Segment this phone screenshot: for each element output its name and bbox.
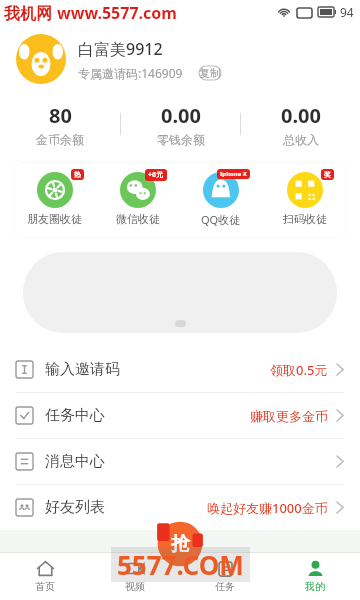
button[interactable]: 抢红包 xyxy=(154,518,206,570)
button[interactable]: 0.00 xyxy=(241,102,360,147)
staticText: 消息中心 xyxy=(45,452,105,471)
button[interactable]: 我的 xyxy=(270,552,360,600)
staticText: 复制 xyxy=(199,66,221,80)
button[interactable]: 0.00 xyxy=(121,102,240,147)
button[interactable]: 复制 xyxy=(191,65,229,81)
staticText: +6元 xyxy=(148,170,164,180)
staticText: QQ收徒 xyxy=(201,212,241,227)
button[interactable]: 白富美9912 xyxy=(0,24,360,94)
staticText: 专属邀请码:146909 xyxy=(78,65,183,81)
staticText: 抢 xyxy=(171,532,190,556)
button[interactable]: 消息中心 xyxy=(0,439,360,484)
staticText: 输入邀请码 xyxy=(45,360,120,379)
staticText: 赚取更多金币 xyxy=(250,408,328,424)
staticText: 80 xyxy=(49,102,72,129)
staticText: 我机网 xyxy=(4,2,57,24)
staticText: 首页 xyxy=(35,580,55,593)
staticText: 领取0.5元 xyxy=(270,361,328,379)
staticText: 唤起好友赚1000金币 xyxy=(207,499,328,517)
staticText: www.5577.com xyxy=(57,2,177,24)
staticText: 白富美9912 xyxy=(78,38,163,60)
button[interactable]: 任务中心 xyxy=(0,393,360,438)
staticText: Iphone X xyxy=(220,170,247,178)
button[interactable]: 输入邀请码 xyxy=(0,347,360,392)
staticText: 奖 xyxy=(324,170,331,179)
staticText: 0.00 xyxy=(161,102,201,129)
staticText: 任务中心 xyxy=(45,406,105,425)
staticText: 0.00 xyxy=(281,102,321,129)
staticText: 热 xyxy=(74,170,81,179)
button[interactable]: 热 xyxy=(13,170,96,226)
staticText: 视频 xyxy=(125,580,145,593)
button[interactable]: 首页 xyxy=(0,552,90,600)
button[interactable]: 80 xyxy=(0,102,120,147)
staticText: 任务 xyxy=(215,580,235,593)
staticText: 我的 xyxy=(305,580,325,593)
staticText: 好友列表 xyxy=(45,498,105,517)
button[interactable]: 奖 xyxy=(263,170,347,226)
staticText: 朋友圈收徒 xyxy=(27,212,82,226)
button[interactable]: +6元 xyxy=(96,170,179,226)
staticText: 微信收徒 xyxy=(116,212,160,226)
staticText: 5577.COM xyxy=(117,547,244,582)
staticText: 金币余额 xyxy=(36,132,84,147)
button[interactable]: 任务 xyxy=(180,552,270,600)
button[interactable] xyxy=(23,252,337,333)
staticText: 零钱余额 xyxy=(157,132,205,147)
button[interactable]: 好友列表 xyxy=(0,485,360,530)
staticText: 94 xyxy=(340,4,354,20)
button[interactable]: Iphone X xyxy=(179,170,263,227)
staticText: 扫码收徒 xyxy=(283,212,327,226)
staticText: 总收入 xyxy=(283,132,319,147)
button[interactable]: 视频 xyxy=(90,552,180,600)
